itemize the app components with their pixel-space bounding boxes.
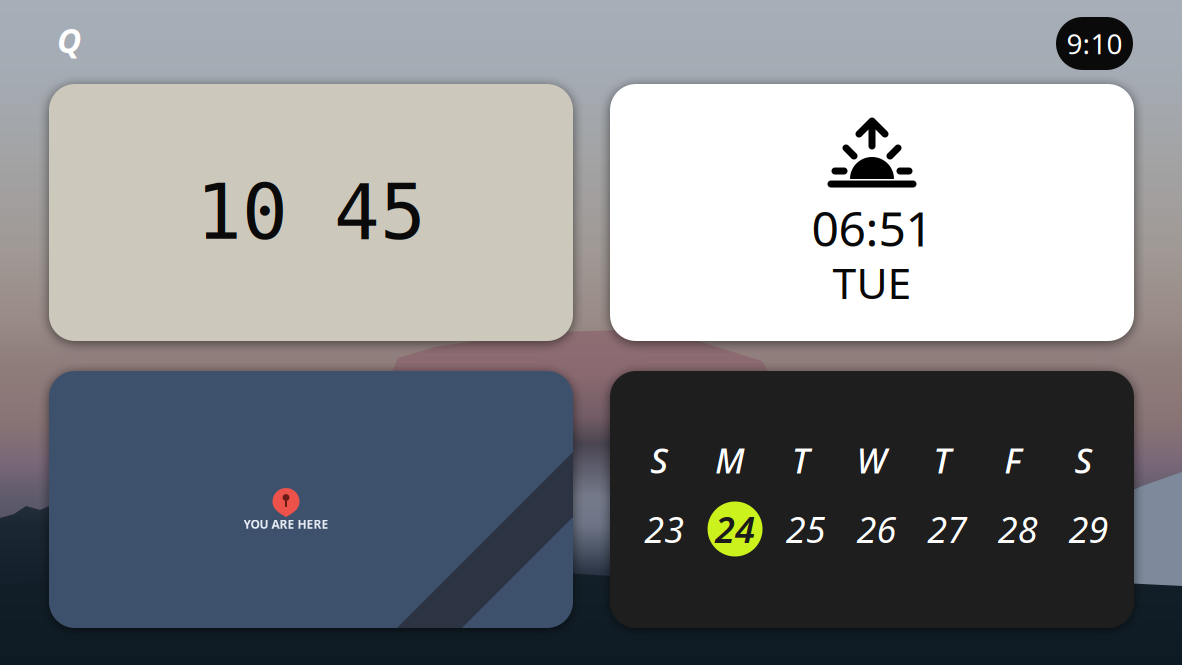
staticText: W (856, 437, 886, 483)
staticText: S (650, 437, 668, 483)
button[interactable]: 10 45 (49, 84, 573, 341)
button[interactable]: 06:51 (610, 84, 1134, 341)
staticText: 06:51 (811, 196, 932, 260)
staticText: YOU ARE HERE (243, 516, 328, 532)
staticText: S (1074, 437, 1092, 483)
staticText: F (1004, 437, 1021, 483)
staticText: 10 45 (196, 169, 426, 256)
staticText: 9:10 (1066, 25, 1122, 62)
staticText: 24 (715, 505, 755, 553)
button[interactable]: 9:10 (1056, 17, 1133, 70)
staticText: 25 (786, 505, 826, 553)
staticText: 23 (644, 505, 684, 553)
staticText: T (933, 437, 951, 483)
staticText: M (715, 437, 745, 483)
staticText: 27 (927, 505, 967, 553)
staticText: 28 (998, 505, 1038, 553)
button[interactable]: S (610, 371, 1134, 628)
staticText: TUE (832, 254, 911, 311)
staticText: 29 (1068, 505, 1108, 553)
staticText: 26 (856, 505, 896, 553)
button[interactable]: YOU ARE HERE (49, 371, 573, 628)
staticText: Q (57, 18, 81, 62)
staticText: T (792, 437, 810, 483)
